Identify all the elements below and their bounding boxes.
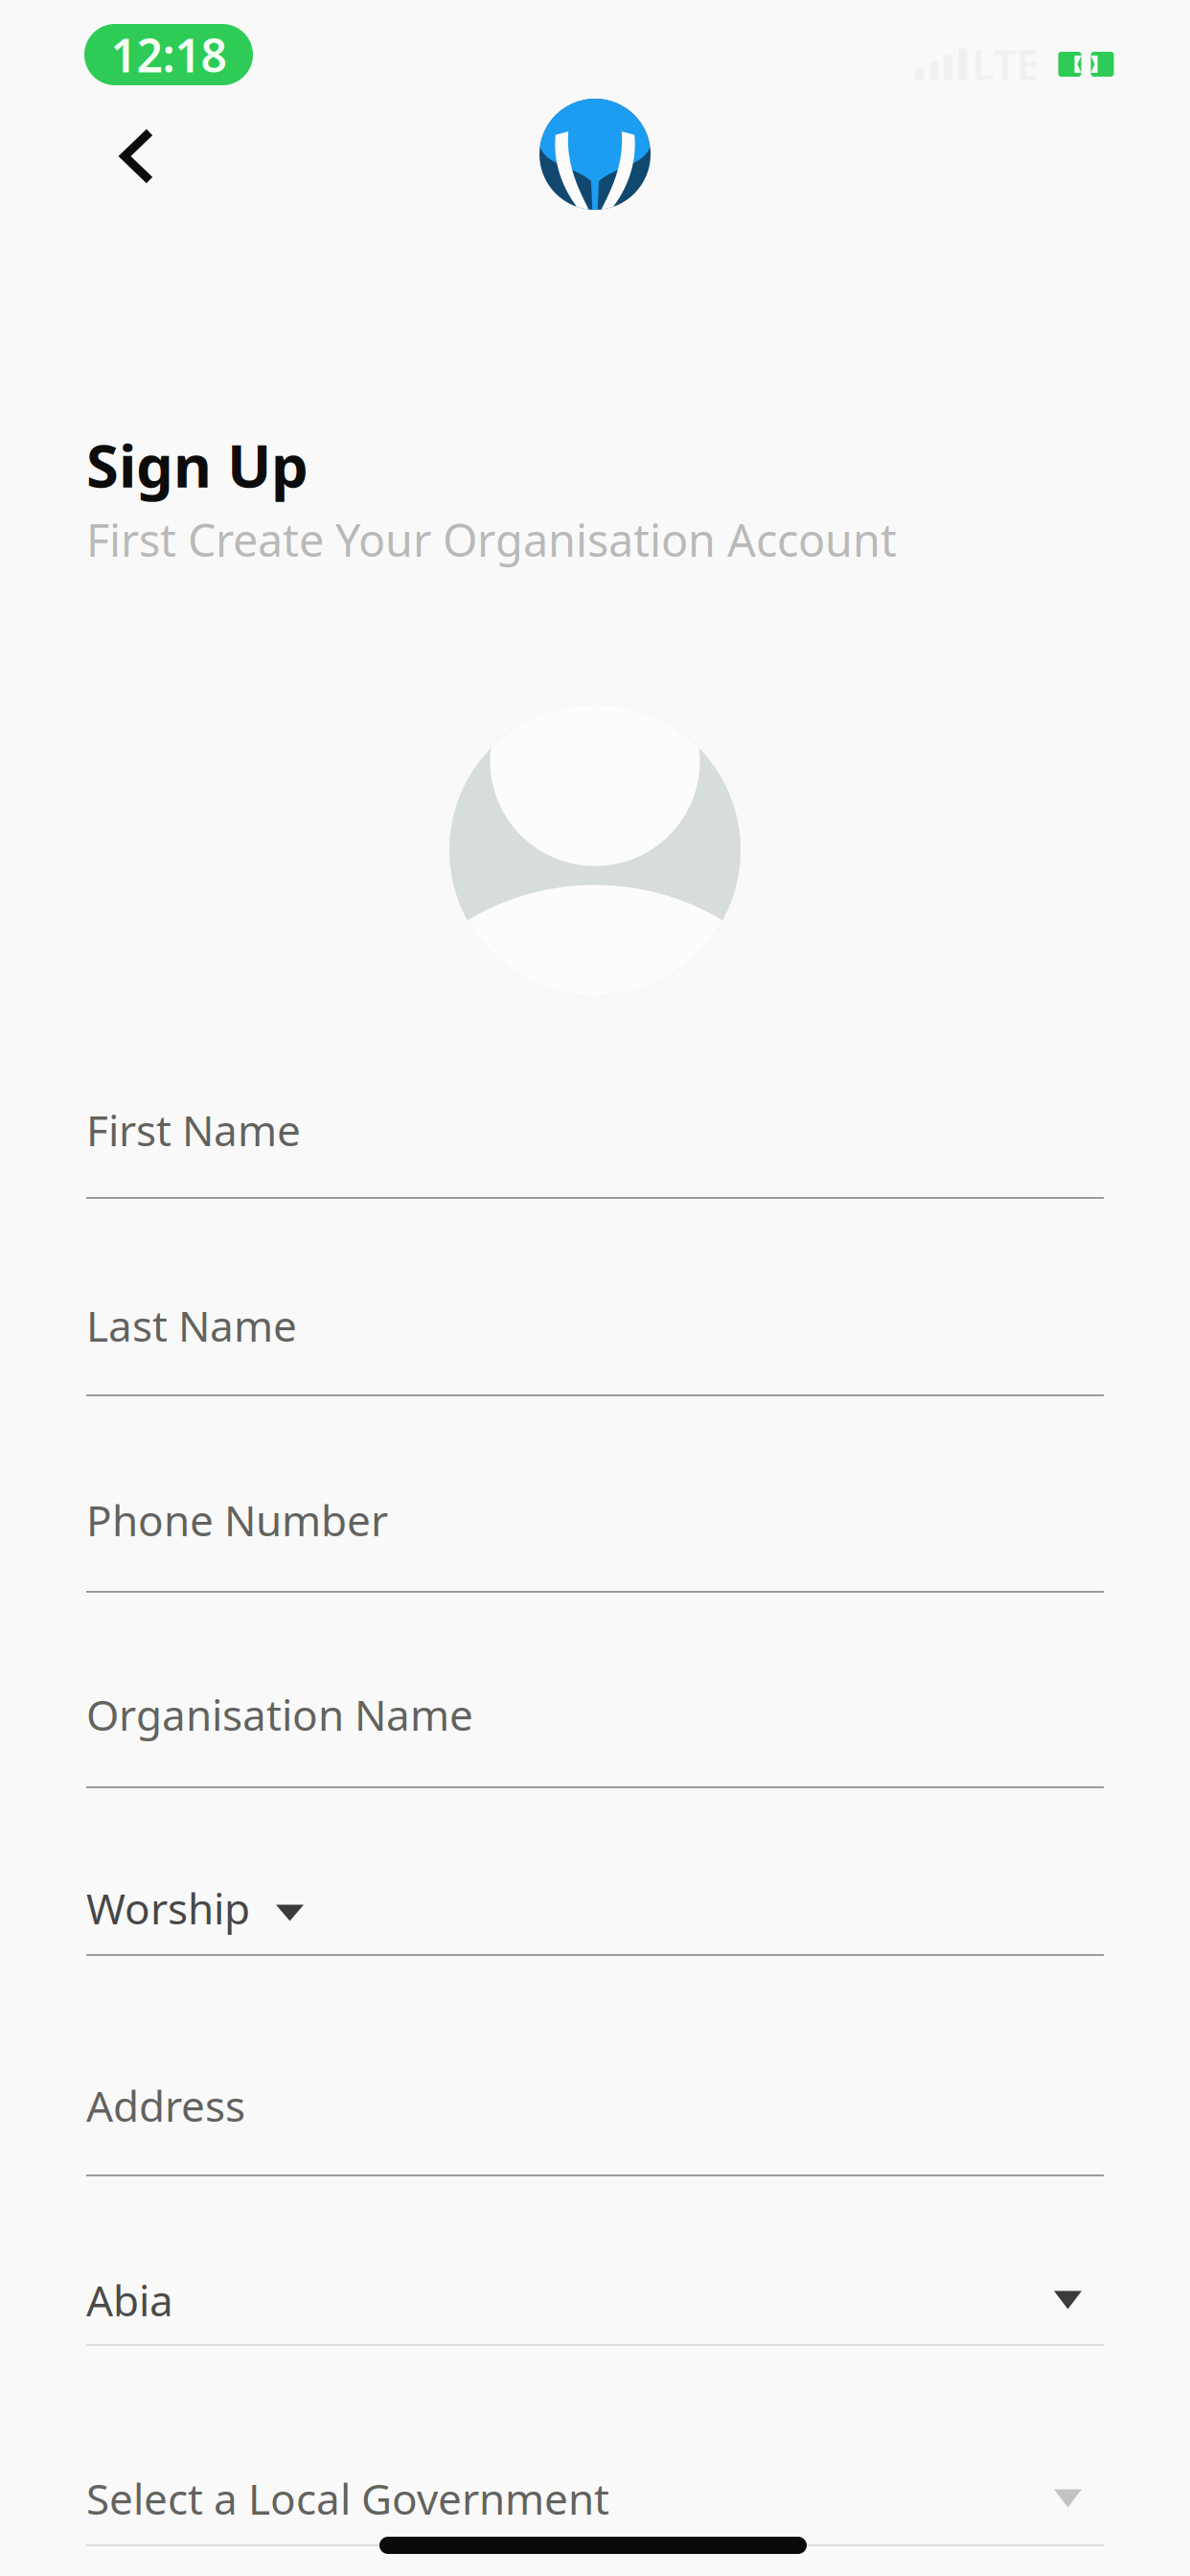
staticText: First Create Your Organisation Account — [86, 510, 897, 569]
staticText: 12:18 — [111, 24, 227, 85]
button[interactable]: Abia — [86, 2239, 1104, 2377]
button[interactable]: First Name — [86, 1069, 1104, 1230]
button[interactable]: Back — [84, 103, 190, 209]
button[interactable]: Worship — [86, 1847, 1104, 1987]
staticText: Sign Up — [86, 426, 309, 504]
button[interactable]: Active call — [84, 24, 253, 85]
staticText: Last Name — [86, 1297, 297, 1353]
staticText: LTE — [972, 37, 1039, 91]
button[interactable]: Last Name — [86, 1264, 1104, 1427]
staticText: Organisation Name — [86, 1686, 473, 1742]
button[interactable]: Choose profile photo — [449, 704, 741, 996]
staticText: Phone Number — [86, 1492, 388, 1548]
button[interactable]: Phone Number — [86, 1459, 1104, 1623]
staticText: Abia — [86, 2272, 173, 2328]
button[interactable]: Address — [86, 2044, 1104, 2207]
staticText: First Name — [86, 1102, 301, 1158]
button[interactable]: Select a Local Government — [86, 2437, 1104, 2576]
staticText: Select a Local Government — [86, 2470, 609, 2526]
staticText: Address — [86, 2077, 245, 2133]
button[interactable]: Organisation Name — [86, 1653, 1104, 1819]
staticText: Worship — [86, 1880, 250, 1936]
